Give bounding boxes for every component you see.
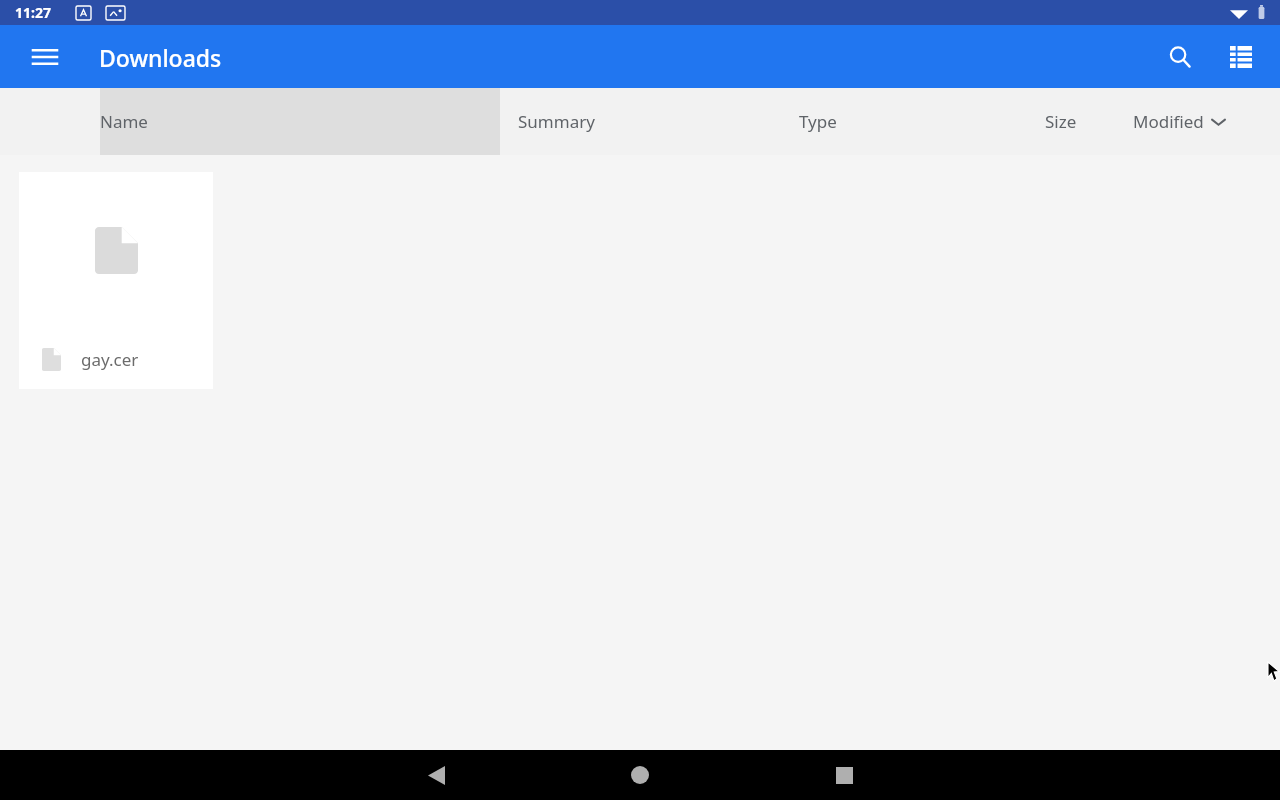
staticText: Downloads [99, 42, 222, 73]
button[interactable]: Back [405, 750, 467, 800]
button[interactable]: Summary [518, 110, 595, 133]
staticText: Modified [1133, 110, 1204, 133]
button[interactable]: gay.cer [19, 172, 213, 389]
button[interactable]: Open navigation menu [22, 34, 68, 80]
button[interactable]: Size [1045, 110, 1077, 133]
button[interactable]: Search [1155, 32, 1205, 82]
button[interactable]: Home [609, 750, 671, 800]
button[interactable]: Modified [1133, 110, 1225, 133]
staticText: 11:27 [15, 3, 51, 22]
button[interactable]: Type [799, 110, 837, 133]
button[interactable]: Switch view [1216, 32, 1266, 82]
button[interactable]: Recent apps [813, 750, 875, 800]
staticText: Name [100, 110, 148, 133]
button[interactable] [100, 88, 500, 155]
staticText: gay.cer [81, 348, 139, 371]
